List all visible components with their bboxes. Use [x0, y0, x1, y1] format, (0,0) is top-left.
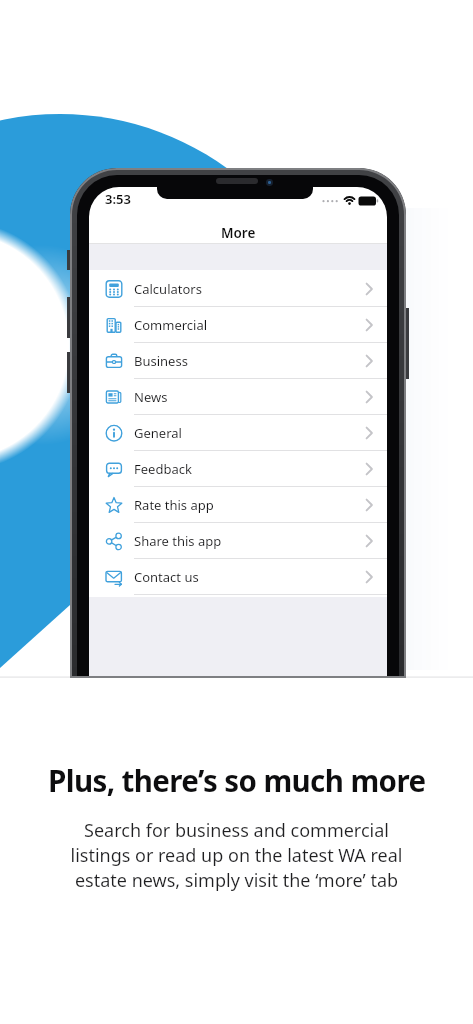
button[interactable]: Business	[89, 343, 387, 379]
staticText: General	[134, 424, 182, 442]
button[interactable]: Contact us	[89, 559, 387, 595]
staticText: Share this app	[134, 532, 222, 550]
staticText: Plus, there’s so much more	[48, 760, 426, 800]
staticText: Search for business and commercial listi…	[70, 818, 403, 893]
button[interactable]: Rate this app	[89, 487, 387, 523]
staticText: Calculators	[134, 280, 202, 298]
staticText: Rate this app	[134, 496, 214, 514]
button[interactable]: Calculators	[89, 271, 387, 307]
button[interactable]: Commercial	[89, 307, 387, 343]
staticText: More	[221, 224, 256, 240]
staticText: News	[134, 388, 168, 406]
staticText: 3:53	[105, 190, 131, 208]
staticText: Business	[134, 352, 188, 370]
staticText: Contact us	[134, 568, 199, 586]
button[interactable]: Share this app	[89, 523, 387, 559]
button[interactable]: General	[89, 415, 387, 451]
staticText: Commercial	[134, 316, 208, 334]
button[interactable]: News	[89, 379, 387, 415]
staticText: Feedback	[134, 460, 192, 478]
button[interactable]: Feedback	[89, 451, 387, 487]
